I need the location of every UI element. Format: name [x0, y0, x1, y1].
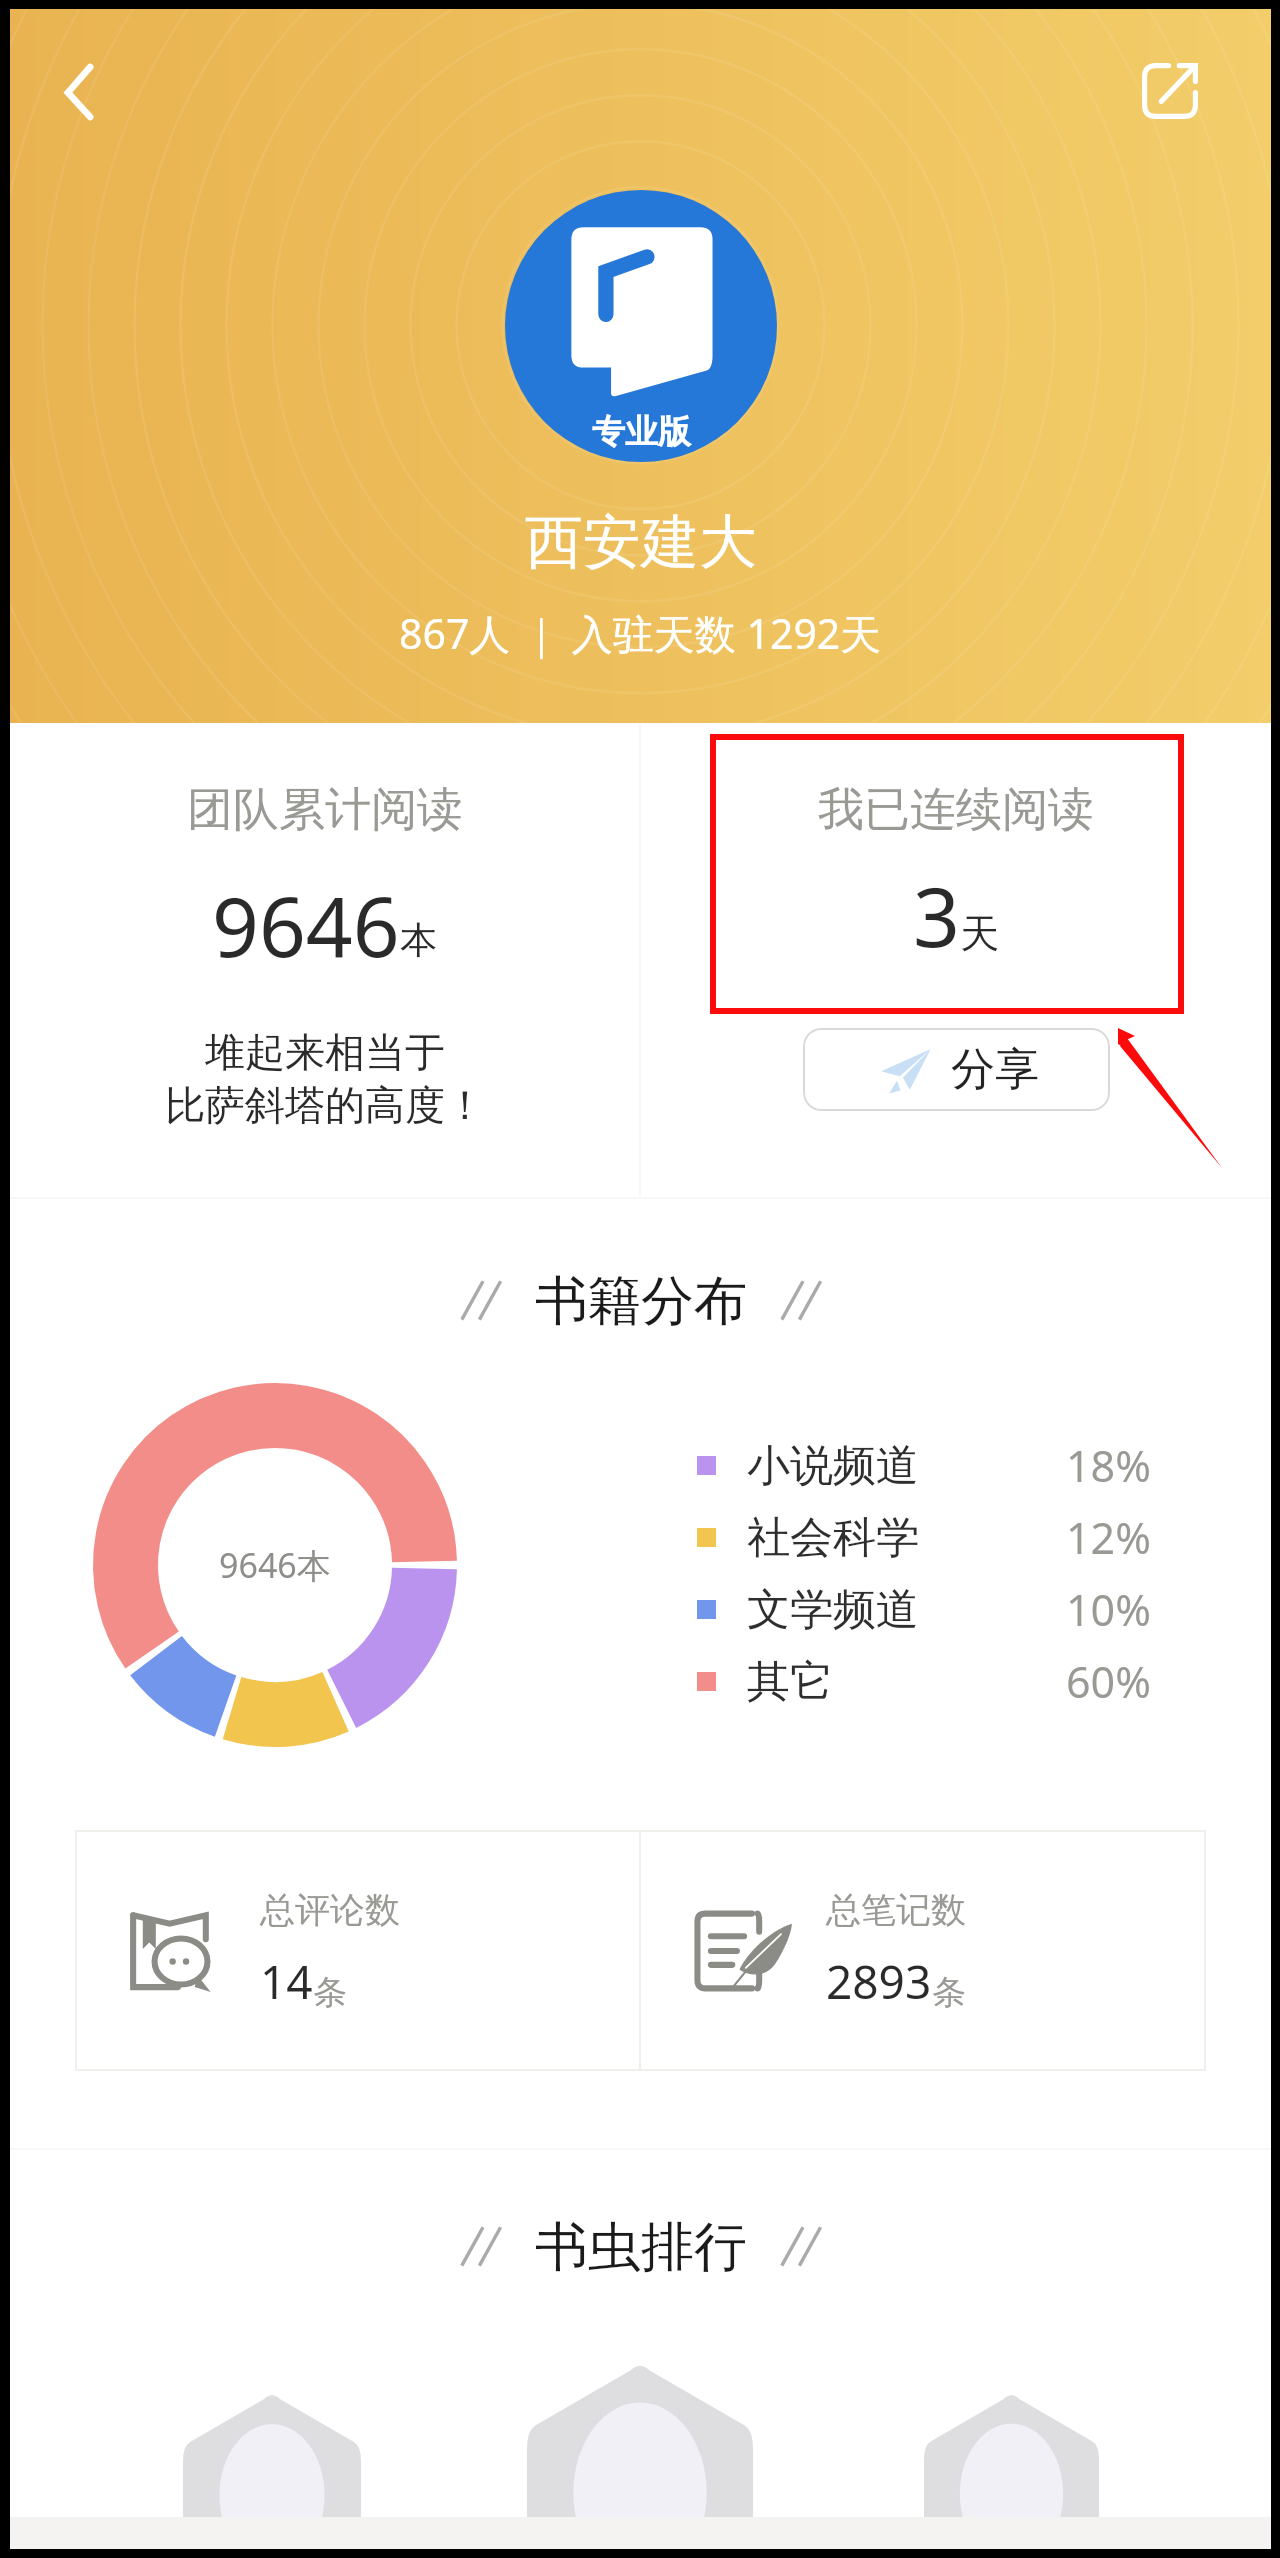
- staticText: 天: [960, 909, 999, 958]
- staticText: 10%: [1066, 1580, 1151, 1639]
- staticText: 西安建大: [525, 506, 757, 579]
- staticText: 总笔记数: [826, 1888, 966, 1932]
- staticText: 分享: [951, 1042, 1039, 1097]
- staticText: 12%: [1066, 1508, 1151, 1567]
- staticText: 团队累计阅读: [187, 781, 463, 839]
- staticText: 小说频道: [747, 1439, 919, 1493]
- staticText: 60%: [1066, 1652, 1151, 1711]
- staticText: 2893: [826, 1950, 932, 2013]
- staticText: 文学频道: [747, 1583, 919, 1637]
- button[interactable]: Open external link: [1142, 63, 1198, 119]
- staticText: 14: [260, 1950, 313, 2013]
- staticText: 总评论数: [260, 1888, 400, 1932]
- staticText: 条: [313, 1971, 347, 2014]
- staticText: 专业版: [592, 411, 691, 453]
- staticText: 书籍分布: [535, 1268, 747, 1335]
- staticText: 3: [913, 859, 960, 971]
- staticText: 867人 ｜ 入驻天数 1292天: [399, 605, 882, 661]
- staticText: 书虫排行: [535, 2214, 747, 2281]
- staticText: 18%: [1066, 1436, 1151, 1495]
- staticText: 我已连续阅读: [818, 781, 1094, 839]
- staticText: 9646: [212, 869, 400, 981]
- staticText: 社会科学: [747, 1511, 919, 1565]
- staticText: 本: [400, 917, 437, 964]
- staticText: 条: [932, 1971, 966, 2014]
- button[interactable]: 分享: [803, 1028, 1110, 1111]
- button[interactable]: Back: [47, 53, 119, 125]
- staticText: 9646本: [219, 1542, 331, 1588]
- staticText: 其它: [747, 1655, 833, 1709]
- staticText: 堆起来相当于 比萨斜塔的高度！: [165, 1027, 485, 1130]
